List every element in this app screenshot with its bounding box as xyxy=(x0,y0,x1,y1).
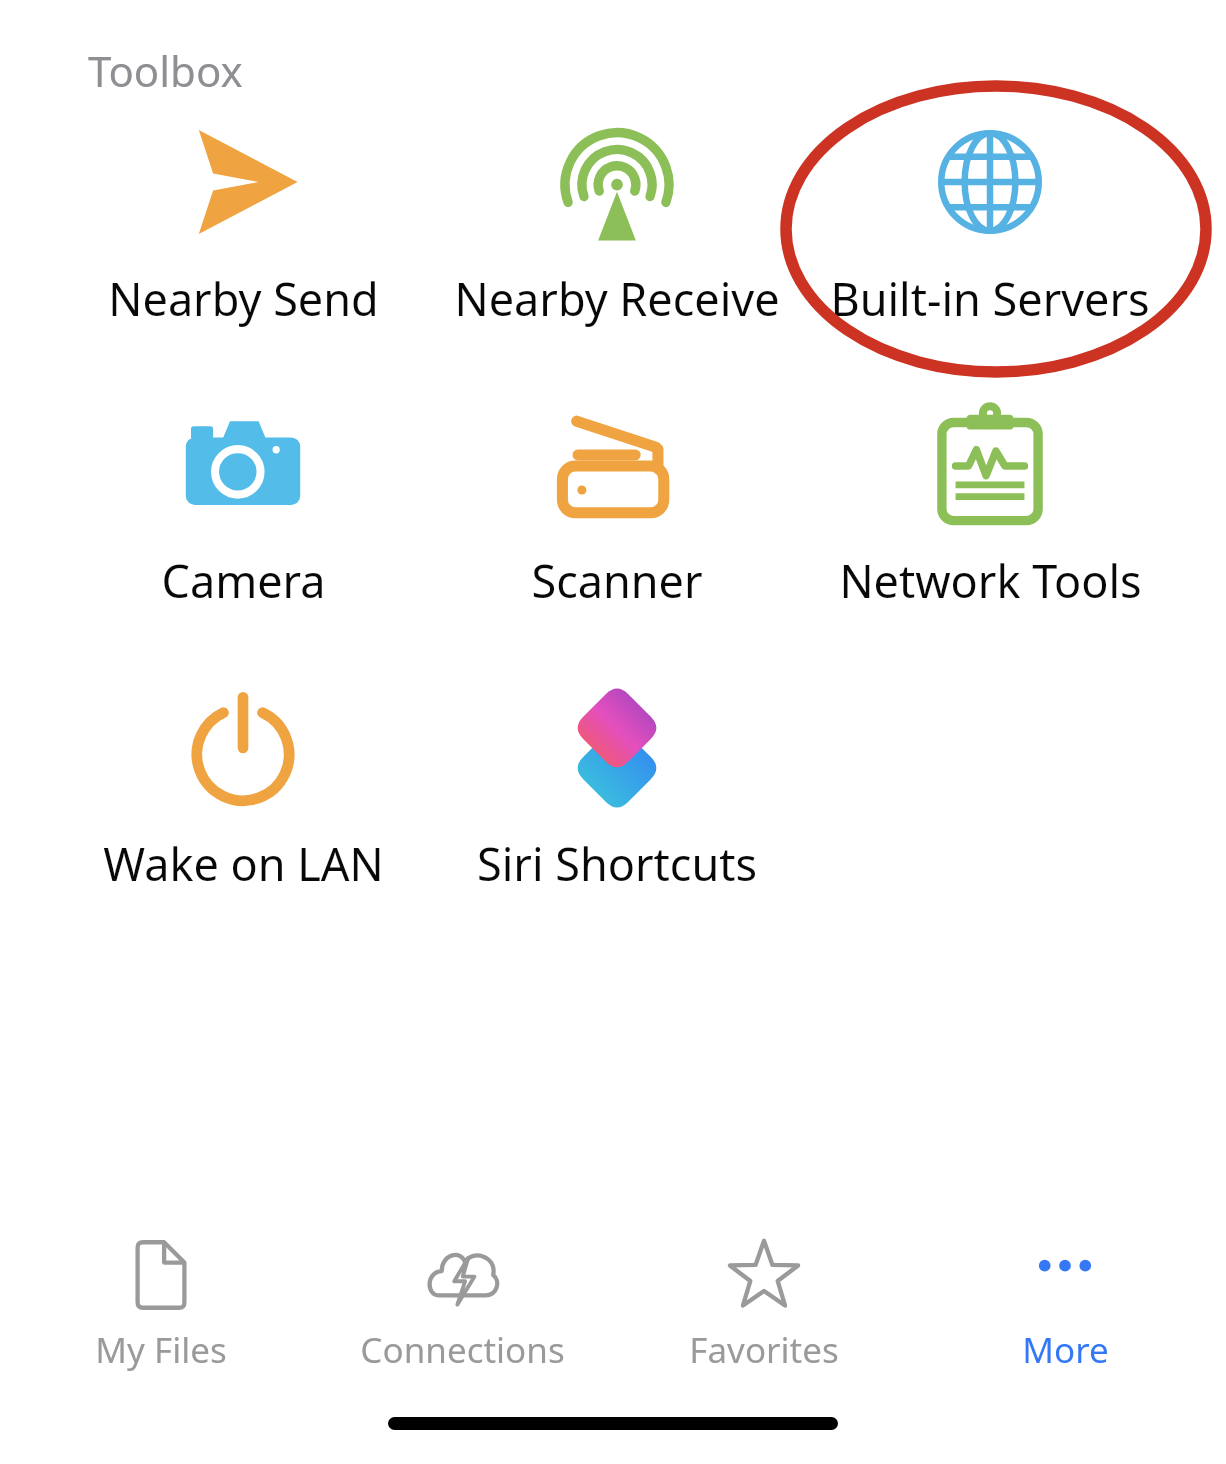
button[interactable]: Connections xyxy=(322,1228,602,1374)
staticText: Toolbox xyxy=(88,42,243,99)
staticText: Connections xyxy=(360,1326,565,1374)
button[interactable]: Wake on LAN xyxy=(63,676,423,894)
staticText: My Files xyxy=(95,1326,227,1374)
button[interactable]: Favorites xyxy=(624,1228,904,1374)
button[interactable]: Nearby Send xyxy=(63,110,423,329)
button[interactable]: Nearby Receive xyxy=(437,110,797,329)
button[interactable]: Siri Shortcuts xyxy=(437,676,797,894)
button[interactable]: More xyxy=(925,1228,1205,1374)
staticText: Wake on LAN xyxy=(103,833,384,894)
button[interactable]: My Files xyxy=(21,1228,301,1374)
staticText: Nearby Receive xyxy=(454,268,780,329)
staticText: Nearby Send xyxy=(108,268,379,329)
button[interactable]: Scanner xyxy=(437,394,797,611)
staticText: Built-in Servers xyxy=(830,268,1150,329)
button[interactable]: Built-in Servers xyxy=(810,110,1170,329)
staticText: More xyxy=(1022,1326,1109,1374)
staticText: Favorites xyxy=(689,1326,839,1374)
button[interactable]: Camera xyxy=(63,394,423,611)
staticText: Scanner xyxy=(531,550,703,611)
button[interactable]: Network Tools xyxy=(810,394,1170,611)
staticText: Camera xyxy=(161,550,326,611)
staticText: Network Tools xyxy=(839,550,1142,611)
staticText: Siri Shortcuts xyxy=(477,833,757,894)
